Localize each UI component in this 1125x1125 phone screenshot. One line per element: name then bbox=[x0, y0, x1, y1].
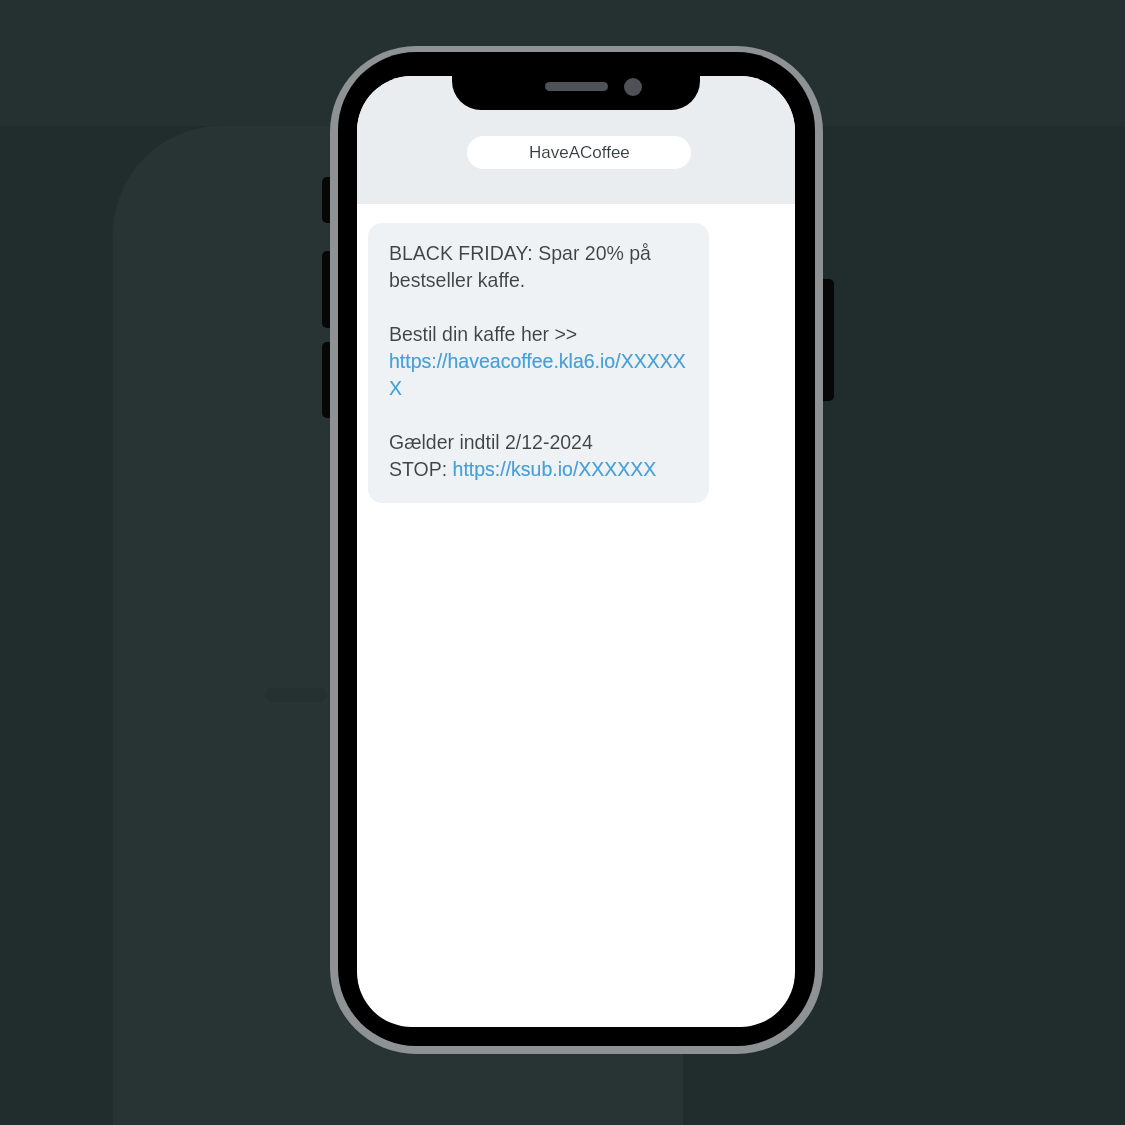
button[interactable]: BLACK FRIDAY: Spar 20% på bestseller kaf… bbox=[368, 223, 709, 503]
staticText: BLACK FRIDAY: Spar 20% på bestseller kaf… bbox=[389, 242, 686, 480]
staticText: HaveACoffee bbox=[529, 143, 630, 162]
button[interactable]: HaveACoffee bbox=[467, 136, 691, 169]
